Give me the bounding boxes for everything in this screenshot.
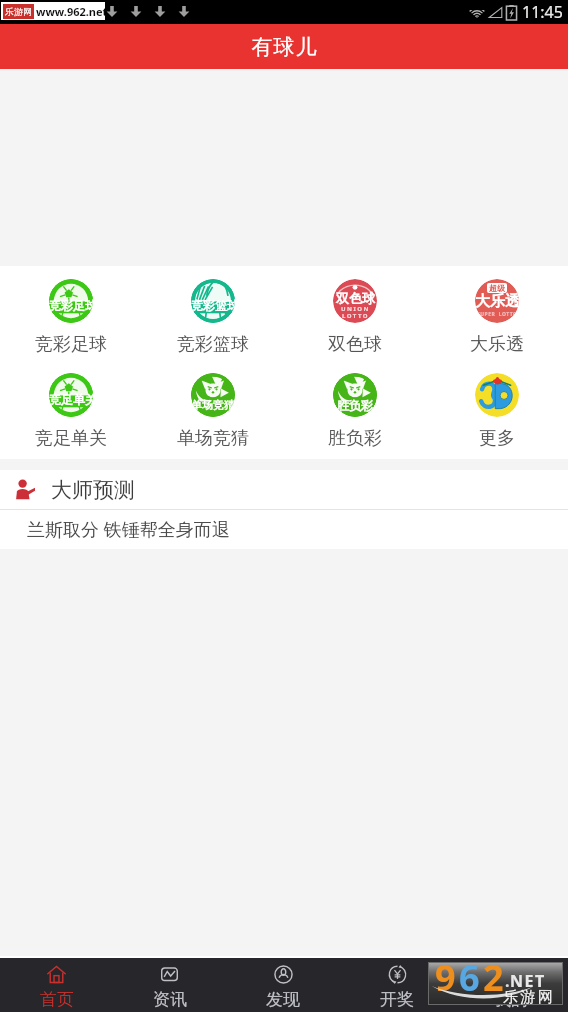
staticText: 大乐透 (475, 292, 519, 311)
button[interactable]: 发现 (226, 958, 340, 1012)
staticText: 有球儿 (251, 34, 317, 60)
button[interactable]: 竞彩足球 (0, 266, 142, 362)
button[interactable]: 开奖 (340, 958, 454, 1012)
staticText: 开奖 (380, 989, 414, 1010)
staticText: 竞彩足球 (35, 333, 107, 356)
staticText: 大乐透 (470, 333, 524, 356)
staticText: 竞彩篮球 (191, 298, 235, 313)
button[interactable]: 首页 (0, 958, 113, 1012)
button[interactable]: 单场竞猜 (142, 362, 284, 458)
staticText: 竞彩足球 (49, 298, 93, 313)
staticText: NET (510, 970, 546, 992)
button[interactable]: 竞彩篮球 (142, 266, 284, 362)
staticText: 双色球 (328, 333, 382, 356)
staticText: 乐游网 (5, 6, 32, 17)
button[interactable]: 超级 (426, 266, 568, 362)
staticText: . (505, 970, 510, 992)
button[interactable]: 竞足单关 (0, 362, 142, 458)
staticText: 兰斯取分 铁锤帮全身而退 (27, 517, 230, 542)
staticText: 胜负彩 (328, 427, 382, 450)
staticText: 竞足单关 (49, 392, 93, 407)
button[interactable]: 双色球 (284, 266, 426, 362)
staticText: 大师预测 (51, 477, 135, 503)
staticText: 资讯 (153, 989, 187, 1010)
staticText: 超级 (489, 283, 505, 293)
staticText: UNION (341, 305, 370, 313)
staticText: 胜负彩 (337, 398, 373, 413)
staticText: 单场竞猜 (177, 427, 249, 450)
staticText: 6 (459, 953, 483, 994)
staticText: 乐游网 (503, 988, 556, 1007)
staticText: 双色球 (336, 290, 375, 306)
staticText: www.962.net (36, 4, 108, 19)
button[interactable]: 我的 (454, 958, 568, 1012)
staticText: 2 (483, 953, 507, 994)
staticText: 9 (435, 953, 459, 994)
button[interactable]: 资讯 (113, 958, 226, 1012)
staticText: 11:45 (522, 1, 563, 23)
button[interactable]: 更多 (426, 362, 568, 458)
staticText: LOTTO (342, 312, 369, 320)
button[interactable]: 胜负彩 (284, 362, 426, 458)
staticText: 更多 (479, 427, 515, 450)
staticText: 我的 (494, 989, 528, 1010)
staticText: 单场竞猜 (191, 398, 235, 412)
staticText: 竞彩篮球 (177, 333, 249, 356)
staticText: 发现 (266, 989, 300, 1010)
staticText: 竞足单关 (35, 427, 107, 450)
button[interactable]: 大师预测 (0, 470, 568, 509)
button[interactable]: 兰斯取分 铁锤帮全身而退 (0, 510, 568, 549)
staticText: 首页 (40, 989, 74, 1010)
staticText: SUPER LOTTO (477, 311, 518, 318)
